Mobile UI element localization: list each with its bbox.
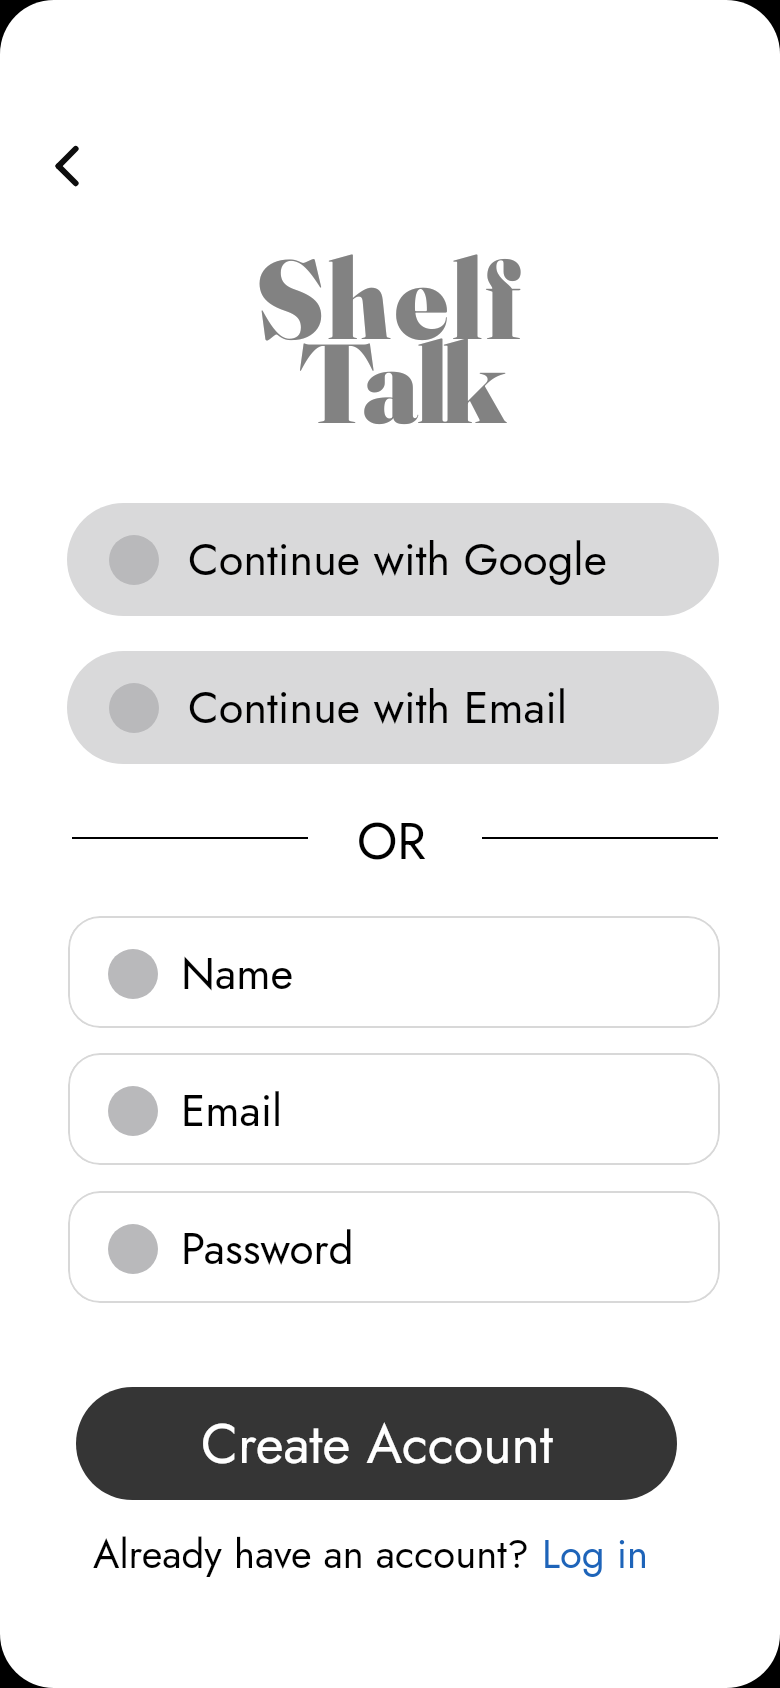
- button[interactable]: Create Account: [76, 1387, 677, 1500]
- staticText: Create Account: [201, 1405, 553, 1483]
- button[interactable]: Email: [68, 1053, 720, 1165]
- staticText: Already have an account?: [93, 1525, 542, 1583]
- button[interactable]: Continue with Google: [67, 503, 719, 616]
- button[interactable]: Continue with Email: [67, 651, 719, 764]
- staticText: OR: [357, 804, 426, 864]
- button[interactable]: Name: [68, 916, 720, 1028]
- button[interactable]: Log in: [542, 1525, 649, 1583]
- staticText: Continue with Email: [188, 675, 568, 740]
- staticText: Name: [181, 942, 294, 1006]
- staticText: Email: [181, 1079, 283, 1143]
- button[interactable]: Back: [32, 132, 102, 202]
- staticText: Continue with Google: [188, 527, 607, 592]
- staticText: Password: [181, 1217, 354, 1281]
- button[interactable]: Password: [68, 1191, 720, 1303]
